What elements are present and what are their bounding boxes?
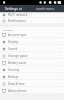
button[interactable]: Display [0, 38, 64, 45]
button[interactable]: Security [0, 66, 64, 73]
staticText: GENERAL [3, 28, 14, 31]
button[interactable]: About phone [0, 87, 64, 94]
button[interactable]: Account sync [0, 31, 64, 38]
button[interactable]: Date & time [0, 80, 64, 87]
staticText: Notifications [8, 19, 58, 23]
button[interactable]: Storage space [0, 52, 64, 59]
staticText: Storage space [8, 54, 58, 58]
staticText: About phone [8, 89, 58, 93]
staticText: Date & time [8, 82, 58, 86]
button[interactable]: Notifications [0, 18, 64, 24]
button[interactable]: Backup [0, 73, 64, 80]
staticText: Battery saver [8, 61, 58, 65]
staticText: Settings ui [5, 6, 22, 11]
staticText: Security [8, 68, 58, 72]
staticText: Wi‑Fi network [8, 13, 58, 17]
staticText: Account sync [8, 33, 58, 37]
button[interactable]: Wi‑Fi network [0, 12, 64, 18]
staticText: Display [8, 40, 58, 44]
staticText: Backup [8, 75, 58, 79]
button[interactable]: Sound [0, 45, 64, 52]
staticText: search menu [36, 7, 55, 11]
staticText: Sound [8, 47, 58, 51]
button[interactable]: Battery saver [0, 59, 64, 66]
